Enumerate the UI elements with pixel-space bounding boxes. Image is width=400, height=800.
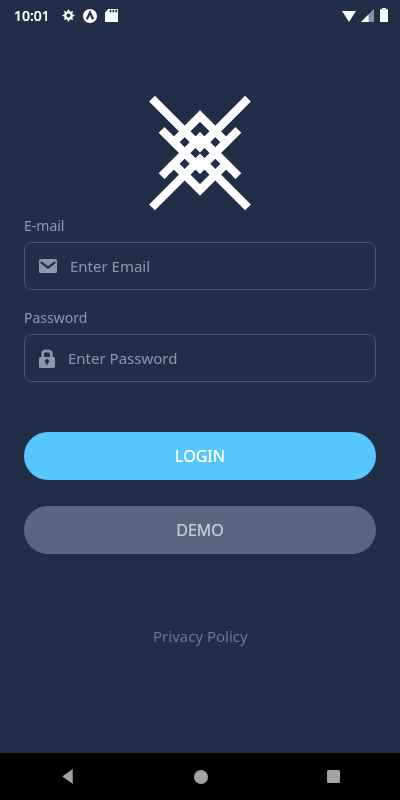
staticText: Password	[24, 308, 88, 327]
button[interactable]: LOGIN	[24, 432, 376, 480]
staticText: E-mail	[24, 216, 65, 235]
staticText: DEMO	[176, 519, 224, 541]
staticText: LOGIN	[175, 445, 225, 467]
staticText: 10:01	[14, 6, 50, 25]
staticText: Enter Password	[68, 348, 178, 368]
button[interactable]: DEMO	[24, 506, 376, 554]
button[interactable]: Recent apps	[267, 753, 400, 800]
staticText: Enter Email	[70, 256, 151, 276]
staticText: Privacy Policy	[153, 626, 248, 646]
button[interactable]: Email	[24, 242, 376, 290]
button[interactable]: Privacy Policy	[141, 620, 260, 652]
button[interactable]: Home	[134, 753, 267, 800]
button[interactable]: Back	[0, 753, 134, 800]
button[interactable]: Password	[24, 334, 376, 382]
